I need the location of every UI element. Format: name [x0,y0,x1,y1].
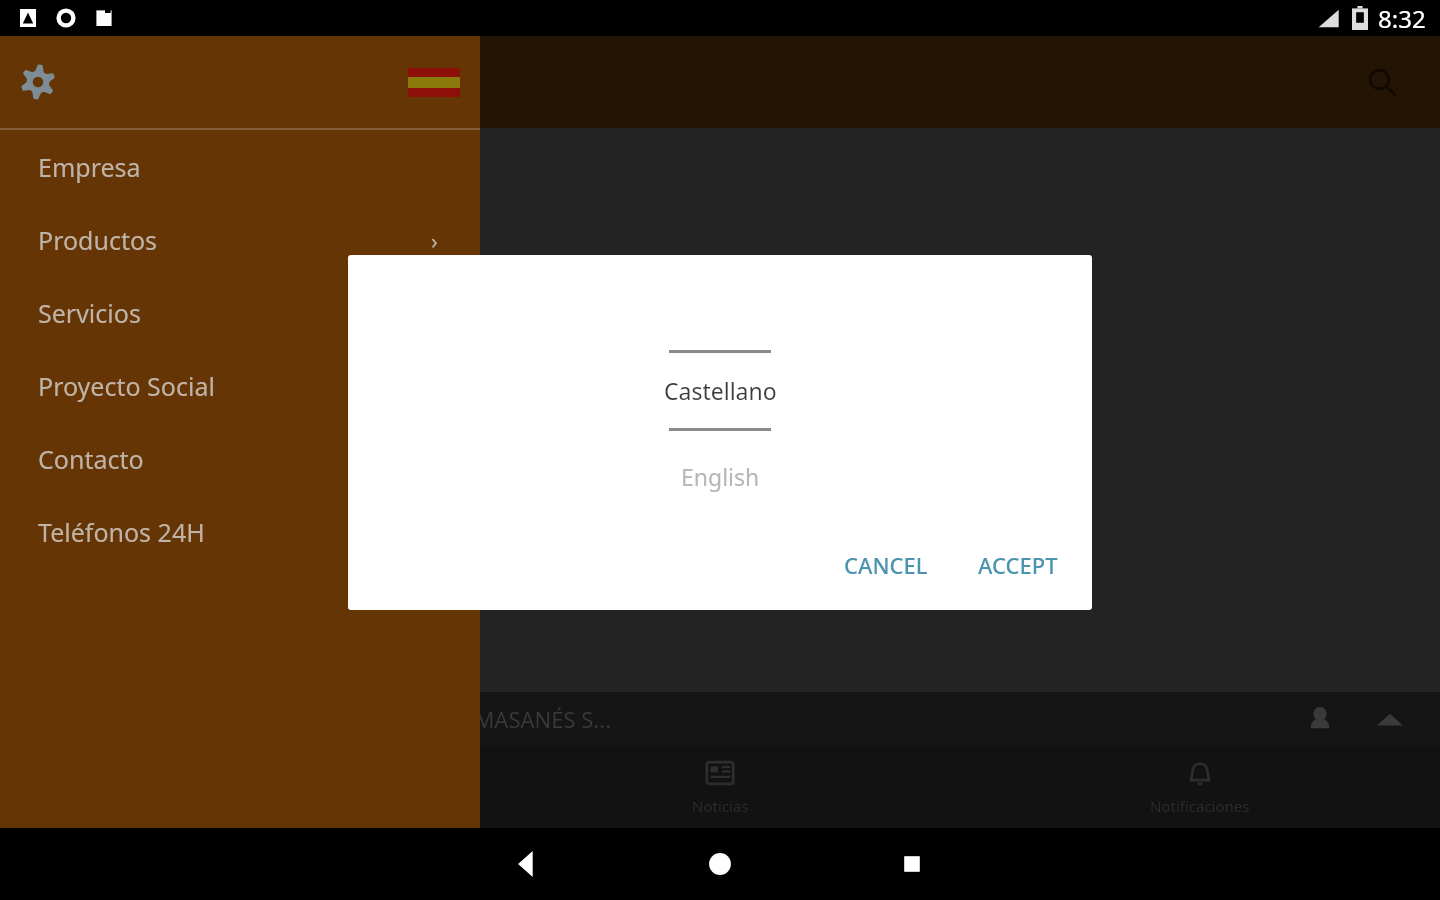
staticText: Proyecto Social [38,369,215,403]
staticText: Productos [38,223,158,257]
staticText: Teléfonos 24H [38,515,205,549]
button[interactable]: Recents [884,836,940,892]
button[interactable]: Empresa [0,130,480,203]
staticText: Empresa [38,150,141,184]
button[interactable]: Back [500,836,556,892]
button[interactable]: Contacto [0,422,480,495]
staticText: 8:32 [1378,2,1426,35]
staticText: Cinta transportadora en Central de Recic… [10,704,612,734]
staticText: Noticias [692,796,749,816]
button[interactable]: CANCEL [824,538,948,592]
staticText: Notificaciones [1150,796,1250,816]
staticText: Toda nuestra experiencia se traduce en u… [40,449,481,518]
button[interactable]: Settings [12,56,64,108]
staticText: › [431,225,438,255]
button[interactable]: Home [692,836,748,892]
button[interactable]: English [610,431,830,521]
button[interactable]: Search [1356,56,1408,108]
button[interactable]: Language [406,54,462,110]
staticText: Servicios [38,296,141,330]
staticText: Contacto [38,442,144,476]
button[interactable]: Teléfonos 24H [0,495,480,568]
button[interactable]: Servicios [0,276,480,349]
button[interactable]: Share [1370,699,1410,739]
button[interactable]: Castellano [610,353,830,428]
staticText: CANCEL [844,550,928,580]
button[interactable]: Proyecto Social [0,349,480,422]
button[interactable]: Account [1300,699,1340,739]
button[interactable]: Productos [0,203,480,276]
staticText: ACCEPT [978,550,1058,580]
staticText: INDUSTRIA [40,212,229,258]
staticText: MASANÉS es especialista en el sector de … [40,288,456,397]
staticText: English [681,461,760,492]
button[interactable]: ACCEPT [958,538,1078,592]
staticText: Castellano [664,375,777,406]
